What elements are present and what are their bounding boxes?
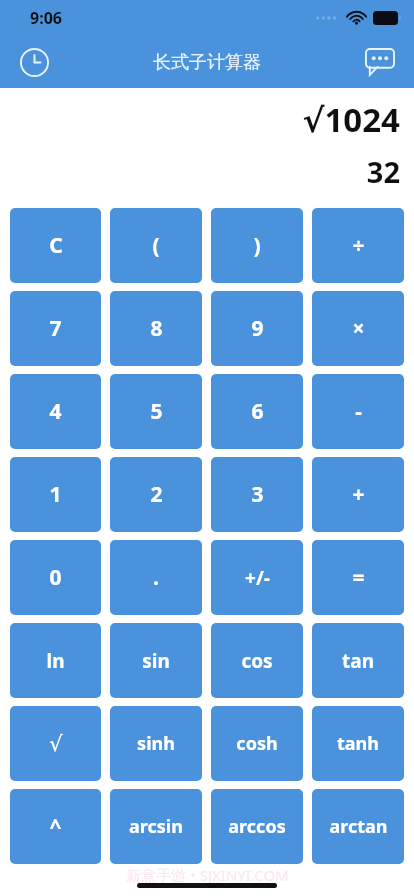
button[interactable]: ) bbox=[211, 208, 303, 283]
button[interactable]: ln bbox=[10, 623, 101, 698]
button[interactable]: 7 bbox=[10, 291, 101, 366]
button[interactable]: arctan bbox=[312, 789, 404, 864]
staticText: ( bbox=[152, 231, 160, 260]
button[interactable]: 4 bbox=[10, 374, 101, 449]
button[interactable]: History bbox=[14, 42, 54, 82]
button[interactable]: 0 bbox=[10, 540, 101, 615]
staticText: = bbox=[352, 563, 365, 592]
button[interactable]: +/- bbox=[211, 540, 303, 615]
staticText: cosh bbox=[236, 731, 278, 756]
staticText: 9:06 bbox=[30, 7, 62, 29]
button[interactable]: 9 bbox=[211, 291, 303, 366]
button[interactable]: ( bbox=[110, 208, 202, 283]
button[interactable]: . bbox=[110, 540, 202, 615]
staticText: cos bbox=[241, 648, 273, 674]
button[interactable]: tan bbox=[312, 623, 404, 698]
button[interactable]: tanh bbox=[312, 706, 404, 781]
button[interactable]: cosh bbox=[211, 706, 303, 781]
button[interactable]: √ bbox=[10, 706, 101, 781]
staticText: 32 bbox=[366, 152, 400, 191]
staticText: 5 bbox=[150, 397, 163, 426]
staticText: sin bbox=[142, 648, 170, 674]
staticText: ) bbox=[253, 231, 261, 260]
staticText: tanh bbox=[337, 731, 379, 756]
staticText: arctan bbox=[329, 814, 388, 839]
button[interactable]: Messages bbox=[360, 42, 400, 82]
staticText: 6 bbox=[251, 397, 264, 426]
button[interactable]: 2 bbox=[110, 457, 202, 532]
staticText: 4 bbox=[49, 397, 62, 426]
staticText: sinh bbox=[137, 731, 175, 756]
staticText: 2 bbox=[150, 480, 163, 509]
staticText: 9 bbox=[251, 314, 264, 343]
button[interactable]: sin bbox=[110, 623, 202, 698]
staticText: + bbox=[352, 480, 365, 509]
button[interactable]: = bbox=[312, 540, 404, 615]
button[interactable]: × bbox=[312, 291, 404, 366]
staticText: ^ bbox=[49, 812, 62, 841]
button[interactable]: arccos bbox=[211, 789, 303, 864]
button[interactable]: arcsin bbox=[110, 789, 202, 864]
button[interactable]: 5 bbox=[110, 374, 202, 449]
button[interactable]: + bbox=[312, 457, 404, 532]
button[interactable]: C bbox=[10, 208, 101, 283]
staticText: 8 bbox=[150, 314, 163, 343]
staticText: C bbox=[49, 231, 63, 260]
button[interactable]: 8 bbox=[110, 291, 202, 366]
button[interactable]: ÷ bbox=[312, 208, 404, 283]
staticText: arccos bbox=[228, 814, 286, 839]
button[interactable]: 1 bbox=[10, 457, 101, 532]
staticText: - bbox=[355, 397, 362, 426]
staticText: √ bbox=[49, 732, 63, 756]
staticText: ln bbox=[46, 648, 65, 674]
staticText: 长式子计算器 bbox=[153, 51, 261, 74]
button[interactable]: - bbox=[312, 374, 404, 449]
staticText: × bbox=[352, 314, 365, 343]
staticText: +/- bbox=[245, 565, 270, 591]
button[interactable]: sinh bbox=[110, 706, 202, 781]
staticText: 7 bbox=[49, 314, 62, 343]
staticText: √1024 bbox=[302, 97, 400, 142]
staticText: tan bbox=[342, 648, 374, 674]
button[interactable]: 3 bbox=[211, 457, 303, 532]
staticText: . bbox=[153, 563, 159, 592]
button[interactable]: ^ bbox=[10, 789, 101, 864]
staticText: ÷ bbox=[352, 231, 365, 260]
staticText: arcsin bbox=[129, 814, 183, 839]
staticText: 新意手游 • SJXINYI.COM bbox=[126, 865, 289, 885]
button[interactable]: 6 bbox=[211, 374, 303, 449]
staticText: 3 bbox=[251, 480, 264, 509]
button[interactable]: cos bbox=[211, 623, 303, 698]
staticText: 1 bbox=[49, 480, 62, 509]
staticText: 0 bbox=[49, 563, 62, 592]
